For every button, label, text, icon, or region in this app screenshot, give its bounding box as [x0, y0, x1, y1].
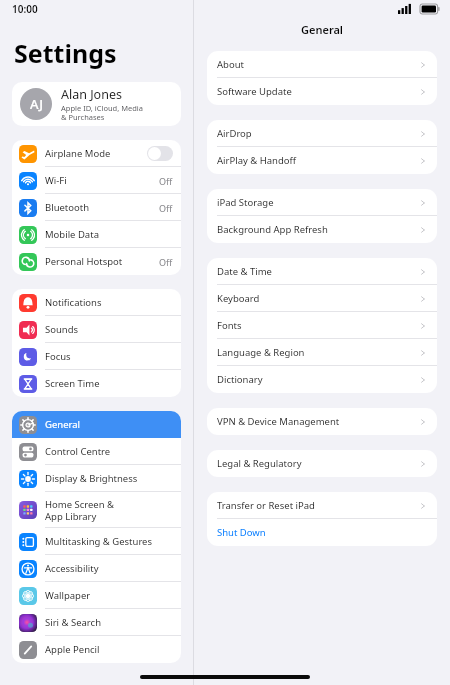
button[interactable]: Personal Hotspot [12, 248, 181, 275]
button[interactable]: Home Screen & App Library [12, 492, 181, 528]
staticText: Screen Time [45, 377, 173, 390]
button[interactable]: Accessibility [12, 555, 181, 582]
button[interactable]: Dictionary [207, 366, 437, 393]
staticText: Siri & Search [45, 616, 173, 629]
staticText: Mobile Data [45, 228, 173, 241]
staticText: 10:00 [12, 2, 38, 16]
button[interactable]: Notifications [12, 289, 181, 316]
staticText: Multitasking & Gestures [45, 535, 173, 548]
staticText: Accessibility [45, 562, 173, 575]
button[interactable]: VPN & Device Management [207, 408, 437, 435]
button[interactable]: General [12, 411, 181, 438]
staticText: Display & Brightness [45, 472, 173, 485]
staticText: Off [159, 175, 173, 187]
staticText: Dictionary [217, 373, 419, 386]
staticText: Airplane Mode [45, 147, 147, 160]
staticText: Wallpaper [45, 589, 173, 602]
staticText: Off [159, 202, 173, 214]
button[interactable]: Shut Down [207, 519, 437, 546]
staticText: iPad Storage [217, 196, 419, 209]
staticText: Software Update [217, 85, 419, 98]
staticText: Bluetooth [45, 201, 159, 214]
button[interactable]: Transfer or Reset iPad [207, 492, 437, 519]
button[interactable]: iPad Storage [207, 189, 437, 216]
button[interactable]: AirPlay & Handoff [207, 147, 437, 174]
button[interactable]: Focus [12, 343, 181, 370]
staticText: Focus [45, 350, 173, 363]
button[interactable]: Software Update [207, 78, 437, 105]
staticText: Apple Pencil [45, 643, 173, 656]
staticText: Fonts [217, 319, 419, 332]
staticText: Transfer or Reset iPad [217, 499, 419, 512]
staticText: General [194, 22, 450, 37]
button[interactable]: About [207, 51, 437, 78]
button[interactable]: Apple Pencil [12, 636, 181, 663]
staticText: Apple ID, iCloud, Media & Purchases [61, 103, 143, 123]
staticText: Wi-Fi [45, 174, 159, 187]
staticText: Home Screen & App Library [45, 498, 173, 523]
button[interactable]: Sounds [12, 316, 181, 343]
staticText: Background App Refresh [217, 223, 419, 236]
staticText: Keyboard [217, 292, 419, 305]
staticText: Date & Time [217, 265, 419, 278]
staticText: Sounds [45, 323, 173, 336]
staticText: Personal Hotspot [45, 255, 159, 268]
button[interactable]: Display & Brightness [12, 465, 181, 492]
staticText: About [217, 58, 419, 71]
button[interactable]: AirDrop [207, 120, 437, 147]
button[interactable]: Background App Refresh [207, 216, 437, 243]
staticText: Language & Region [217, 346, 419, 359]
staticText: AirPlay & Handoff [217, 154, 419, 167]
button[interactable]: Screen Time [12, 370, 181, 397]
button[interactable]: Siri & Search [12, 609, 181, 636]
staticText: Off [159, 256, 173, 268]
staticText: Alan Jones [61, 86, 122, 103]
button[interactable]: Control Centre [12, 438, 181, 465]
button[interactable]: Airplane Mode [12, 140, 181, 167]
button[interactable]: Fonts [207, 312, 437, 339]
staticText: Legal & Regulatory [217, 457, 419, 470]
staticText: Control Centre [45, 445, 173, 458]
staticText: AirDrop [217, 127, 419, 140]
staticText: General [45, 418, 173, 431]
button[interactable]: Wi-Fi [12, 167, 181, 194]
button[interactable]: Legal & Regulatory [207, 450, 437, 477]
button[interactable]: Airplane Mode toggle [147, 146, 173, 161]
button[interactable]: AJ [12, 82, 181, 126]
button[interactable]: Bluetooth [12, 194, 181, 221]
button[interactable]: Mobile Data [12, 221, 181, 248]
button[interactable]: Keyboard [207, 285, 437, 312]
staticText: Notifications [45, 296, 173, 309]
staticText: AJ [30, 95, 43, 113]
staticText: Settings [14, 36, 117, 70]
staticText: Shut Down [217, 526, 427, 539]
button[interactable]: Wallpaper [12, 582, 181, 609]
button[interactable]: Date & Time [207, 258, 437, 285]
staticText: VPN & Device Management [217, 415, 419, 428]
button[interactable]: Language & Region [207, 339, 437, 366]
button[interactable]: Multitasking & Gestures [12, 528, 181, 555]
